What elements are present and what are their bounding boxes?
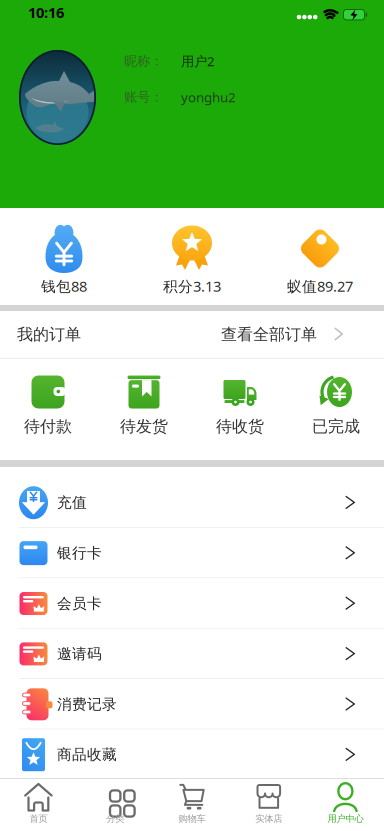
staticText: 待收货: [216, 417, 264, 436]
staticText: yonghu2: [181, 88, 236, 106]
staticText: 实体店: [255, 813, 282, 824]
staticText: 用户2: [181, 52, 215, 70]
button[interactable]: 积分3.13: [128, 223, 256, 295]
button[interactable]: 钱包88: [0, 223, 128, 295]
button[interactable]: 用户中心: [307, 783, 384, 824]
staticText: 商品收藏: [57, 746, 117, 764]
staticText: 昵称：: [124, 53, 163, 69]
button[interactable]: 银行卡: [0, 528, 384, 578]
button[interactable]: 会员卡: [0, 578, 384, 629]
staticText: 查看全部订单: [221, 325, 317, 344]
staticText: 10:16: [28, 2, 64, 22]
staticText: 积分3.13: [163, 276, 221, 296]
button[interactable]: 查看全部订单: [221, 311, 343, 358]
button[interactable]: 商品收藏: [0, 729, 384, 780]
staticText: 邀请码: [57, 645, 102, 663]
staticText: 账号：: [124, 89, 163, 105]
button[interactable]: 实体店: [230, 783, 307, 824]
staticText: 首页: [29, 813, 47, 824]
staticText: 我的订单: [17, 325, 81, 344]
button[interactable]: 购物车: [154, 783, 230, 824]
staticText: 充值: [57, 494, 87, 512]
staticText: 购物车: [178, 813, 205, 824]
button[interactable]: 待发货: [96, 375, 192, 436]
staticText: 会员卡: [57, 594, 102, 612]
button[interactable]: 消费记录: [0, 679, 384, 729]
staticText: 银行卡: [57, 544, 102, 562]
staticText: 已完成: [312, 417, 360, 436]
staticText: 消费记录: [57, 695, 117, 713]
button[interactable]: 蚁值89.27: [256, 223, 384, 295]
button[interactable]: 邀请码: [0, 629, 384, 679]
button[interactable]: 已完成: [288, 375, 384, 436]
staticText: 钱包88: [41, 276, 87, 296]
staticText: 用户中心: [328, 813, 364, 824]
button[interactable]: 待付款: [0, 375, 96, 436]
button[interactable]: 分类: [77, 783, 154, 824]
staticText: 蚁值89.27: [287, 276, 353, 296]
button[interactable]: 首页: [0, 783, 77, 824]
staticText: 待发货: [120, 417, 168, 436]
button[interactable]: 待收货: [192, 375, 288, 436]
staticText: 分类: [106, 813, 124, 824]
button[interactable]: 充值: [0, 477, 384, 528]
staticText: 待付款: [24, 417, 72, 436]
